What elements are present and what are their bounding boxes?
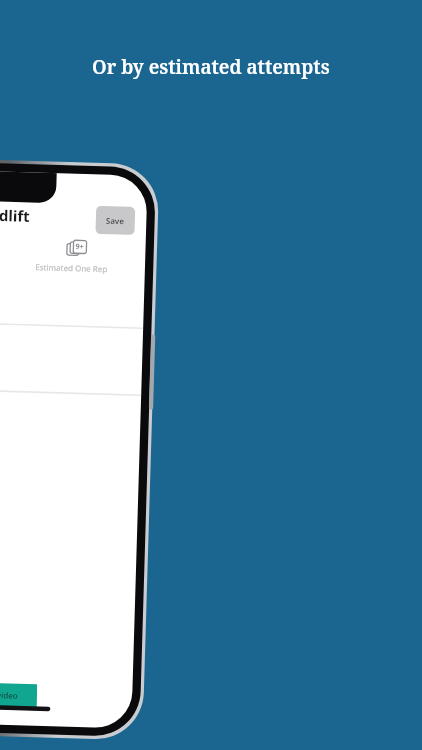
button[interactable]: Or by estimated attempts promo screen	[0, 0, 422, 750]
